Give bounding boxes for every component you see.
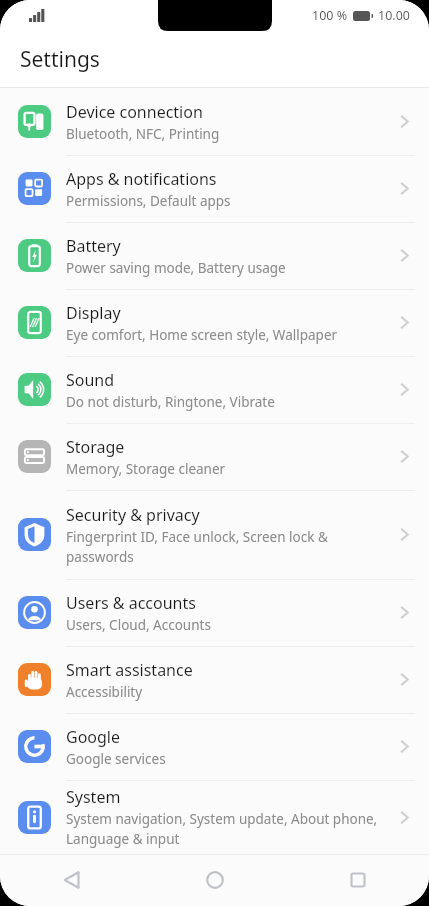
staticText: Sound — [66, 369, 115, 391]
staticText: Users & accounts — [66, 592, 196, 614]
button[interactable]: Apps & notifications — [0, 155, 429, 222]
staticText: Google — [66, 726, 121, 748]
staticText: 100 % — [312, 7, 348, 24]
staticText: Storage — [66, 436, 125, 458]
button[interactable]: Display — [0, 289, 429, 356]
button[interactable]: Google — [0, 713, 429, 780]
staticText: Settings — [20, 45, 100, 74]
staticText: Eye comfort, Home screen style, Wallpape… — [66, 326, 338, 344]
button[interactable]: Security & privacy — [0, 490, 429, 579]
button[interactable]: Battery — [0, 222, 429, 289]
staticText: System — [66, 786, 121, 808]
staticText: Fingerprint ID, Face unlock, Screen lock… — [66, 528, 390, 566]
staticText: Apps & notifications — [66, 168, 217, 190]
staticText: Device connection — [66, 101, 203, 123]
button[interactable]: Sound — [0, 356, 429, 423]
staticText: Display — [66, 302, 121, 324]
staticText: Permissions, Default apps — [66, 192, 231, 210]
button[interactable]: Back — [0, 854, 143, 906]
staticText: System navigation, System update, About … — [66, 810, 390, 848]
button[interactable]: Users & accounts — [0, 579, 429, 646]
staticText: Battery — [66, 235, 121, 257]
staticText: Memory, Storage cleaner — [66, 460, 226, 478]
button[interactable]: Storage — [0, 423, 429, 490]
staticText: Smart assistance — [66, 659, 193, 681]
staticText: Bluetooth, NFC, Printing — [66, 125, 220, 143]
staticText: Users, Cloud, Accounts — [66, 616, 211, 634]
staticText: Security & privacy — [66, 504, 200, 526]
staticText: Accessibility — [66, 683, 143, 701]
button[interactable]: Home — [143, 854, 286, 906]
staticText: Do not disturb, Ringtone, Vibrate — [66, 393, 275, 411]
button[interactable]: System — [0, 780, 429, 854]
button[interactable]: Recents — [286, 854, 429, 906]
staticText: Power saving mode, Battery usage — [66, 259, 286, 277]
button[interactable]: Device connection — [0, 88, 429, 155]
button[interactable]: Smart assistance — [0, 646, 429, 713]
staticText: Google services — [66, 750, 166, 768]
staticText: 10.00 — [378, 7, 410, 24]
